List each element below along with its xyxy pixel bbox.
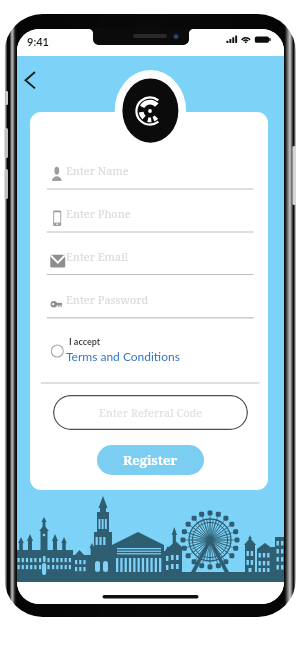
staticText: 9:41: [27, 35, 49, 48]
button[interactable]: Enter Email: [47, 244, 254, 280]
button[interactable]: I accept: [47, 332, 197, 372]
staticText: Terms and Conditions: [66, 349, 181, 363]
staticText: Enter Phone: [66, 206, 131, 221]
button[interactable]: Back: [17, 64, 45, 96]
button[interactable]: Enter Password: [47, 287, 254, 323]
button[interactable]: Enter Name: [47, 158, 254, 194]
staticText: Enter Password: [66, 292, 149, 307]
button[interactable]: Register: [97, 445, 204, 475]
button[interactable]: Enter Phone: [47, 201, 254, 237]
staticText: Register: [123, 451, 178, 469]
button[interactable]: Enter Referral Code: [53, 395, 248, 430]
staticText: I accept: [69, 336, 101, 347]
staticText: Enter Email: [66, 249, 129, 264]
staticText: Enter Referral Code: [99, 405, 203, 420]
staticText: Enter Name: [66, 163, 129, 178]
